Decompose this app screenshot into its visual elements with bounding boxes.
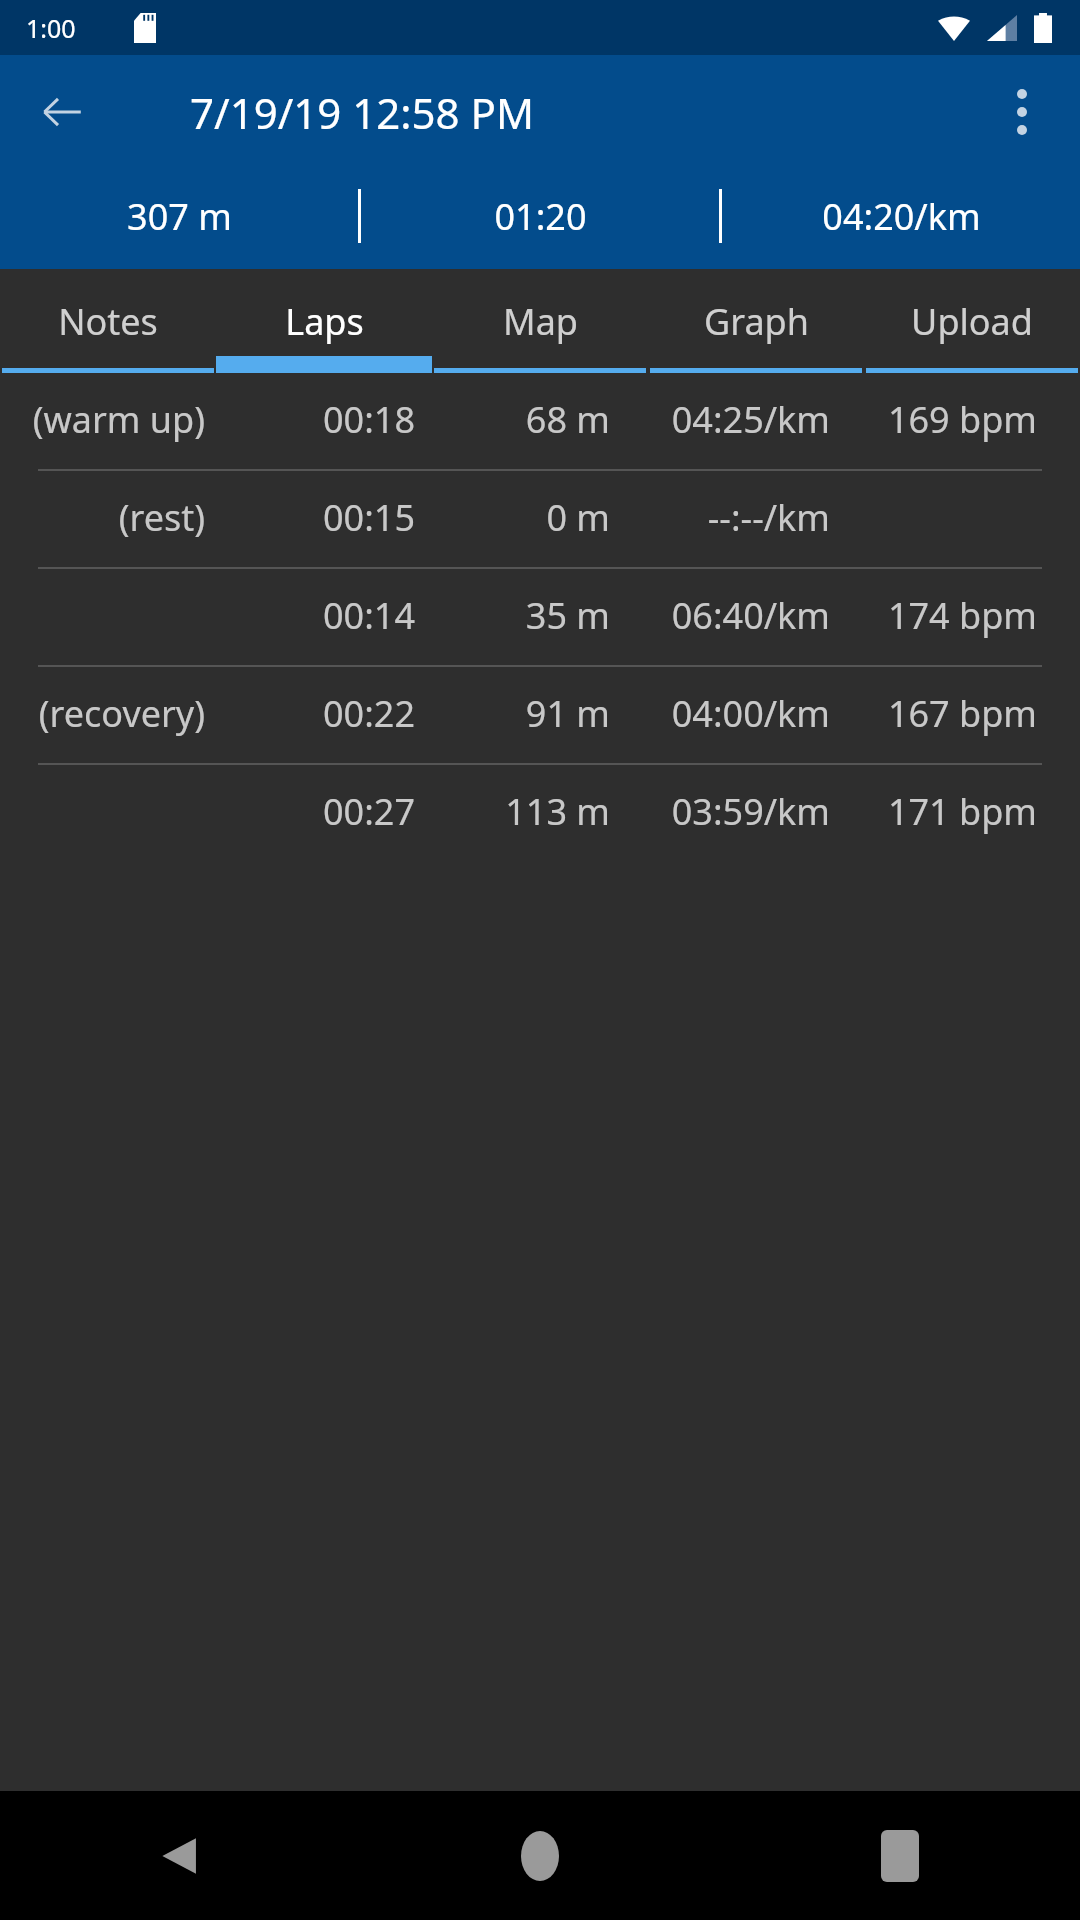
staticText: 35 m bbox=[525, 591, 610, 640]
button[interactable]: 04:20/km bbox=[722, 169, 1080, 263]
staticText: 04:20/km bbox=[822, 192, 981, 241]
staticText: 04:25/km bbox=[671, 395, 830, 444]
button[interactable]: 307 m bbox=[0, 169, 358, 263]
button[interactable]: More options bbox=[984, 74, 1060, 150]
button[interactable]: 01:20 bbox=[361, 169, 719, 263]
staticText: 167 bpm bbox=[887, 689, 1037, 738]
staticText: 113 m bbox=[505, 787, 610, 836]
staticText: 68 m bbox=[525, 395, 610, 444]
staticText: --:--/km bbox=[707, 493, 830, 542]
staticText: 04:00/km bbox=[671, 689, 830, 738]
staticText: Notes bbox=[58, 297, 158, 346]
staticText: 00:22 bbox=[322, 689, 415, 738]
button[interactable]: Notes bbox=[0, 269, 216, 373]
button[interactable]: Recent apps bbox=[720, 1791, 1080, 1920]
staticText: Graph bbox=[704, 297, 809, 346]
button[interactable]: Map bbox=[432, 269, 648, 373]
staticText: 1:00 bbox=[26, 11, 76, 45]
staticText: Map bbox=[503, 297, 578, 346]
button[interactable]: Laps bbox=[216, 269, 432, 373]
staticText: (rest) bbox=[118, 493, 205, 542]
staticText: 307 m bbox=[127, 192, 232, 241]
staticText: 171 bpm bbox=[887, 787, 1037, 836]
staticText: 91 m bbox=[525, 689, 610, 738]
button[interactable]: Graph bbox=[648, 269, 864, 373]
staticText: 00:14 bbox=[322, 591, 415, 640]
staticText: 03:59/km bbox=[671, 787, 830, 836]
staticText: 7/19/19 12:58 PM bbox=[190, 84, 535, 141]
staticText: (warm up) bbox=[32, 395, 205, 444]
button[interactable]: 00:27 bbox=[0, 765, 1080, 861]
button[interactable]: Home bbox=[360, 1791, 720, 1920]
staticText: 169 bpm bbox=[887, 395, 1037, 444]
staticText: (recovery) bbox=[38, 689, 205, 738]
staticText: 00:15 bbox=[322, 493, 415, 542]
staticText: 01:20 bbox=[494, 192, 587, 241]
staticText: 00:18 bbox=[322, 395, 415, 444]
button[interactable]: (warm up) bbox=[0, 373, 1080, 469]
button[interactable]: (rest) bbox=[0, 471, 1080, 567]
staticText: 06:40/km bbox=[671, 591, 830, 640]
staticText: 00:27 bbox=[322, 787, 415, 836]
button[interactable]: Navigate up bbox=[26, 76, 98, 148]
button[interactable]: Back bbox=[0, 1791, 360, 1920]
staticText: Upload bbox=[911, 297, 1033, 346]
staticText: 174 bpm bbox=[887, 591, 1037, 640]
button[interactable]: (recovery) bbox=[0, 667, 1080, 763]
staticText: 0 m bbox=[546, 493, 610, 542]
button[interactable]: 00:14 bbox=[0, 569, 1080, 665]
button[interactable]: Upload bbox=[864, 269, 1080, 373]
staticText: Laps bbox=[285, 297, 364, 346]
